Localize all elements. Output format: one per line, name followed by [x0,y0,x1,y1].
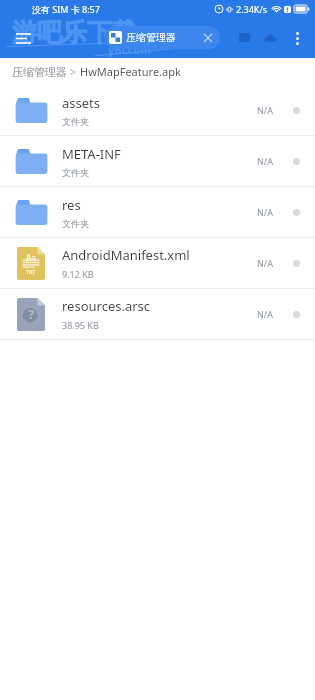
staticText: res [62,196,81,214]
staticText: yBLcom [108,42,152,57]
staticText: AndroidManifest.xml [62,246,190,264]
button[interactable]: Aa [0,238,315,288]
staticText: ? [28,305,35,323]
button[interactable]: Windows [231,25,257,51]
button[interactable]: res [0,187,315,237]
button[interactable]: ? [0,289,315,339]
button[interactable]: 压缩管理器 [12,65,67,79]
staticText: 文件夹 [62,218,89,229]
staticText: 9.12 KB [62,268,94,280]
button[interactable]: Select [285,303,307,325]
button[interactable]: Menu [8,23,38,53]
button[interactable]: Select [285,252,307,274]
staticText: 游吧乐下载 [12,17,137,48]
button[interactable]: Cloud [257,25,283,51]
staticText: N/A [257,206,273,218]
staticText: N/A [257,308,273,320]
staticText: Aa [26,252,36,263]
staticText: 38.95 KB [62,319,99,331]
staticText: TXT [26,269,36,276]
button[interactable]: More options [283,24,311,52]
button[interactable]: 压缩管理器 [104,26,220,49]
staticText: 2.34K/s [236,3,268,15]
button[interactable]: Select [285,150,307,172]
button[interactable]: META-INF [0,136,315,186]
staticText: assets [62,94,100,112]
staticText: 没有 SIM 卡 [32,3,80,15]
staticText: HwMapFeature.apk [80,64,181,79]
staticText: 文件夹 [62,116,89,127]
button[interactable]: assets [0,85,315,135]
staticText: 文件夹 [62,167,89,178]
staticText: N/A [257,104,273,116]
button[interactable]: Close [201,31,215,45]
staticText: 8:57 [82,3,100,15]
button[interactable]: Select [285,99,307,121]
staticText: N/A [257,257,273,269]
staticText: META-INF [62,145,121,163]
staticText: > [67,64,80,79]
staticText: N/A [257,155,273,167]
staticText: resources.arsc [62,297,151,315]
staticText: 压缩管理器 [126,31,201,44]
button[interactable]: Select [285,201,307,223]
